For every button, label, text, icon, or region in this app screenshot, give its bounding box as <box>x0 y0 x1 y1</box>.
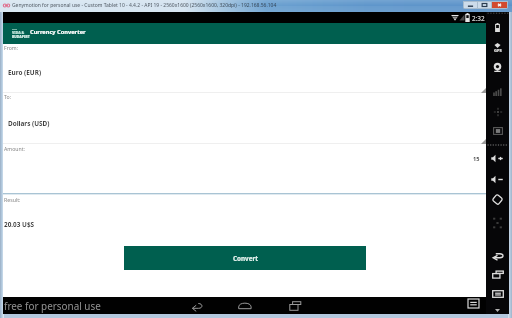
button[interactable]: GPS <box>486 41 509 50</box>
staticText: Currency Converter <box>30 28 86 36</box>
staticText: free for personal use <box>4 299 101 312</box>
button[interactable]: Keyboard pad <box>486 215 509 231</box>
button[interactable]: Recent apps <box>285 297 306 314</box>
button[interactable]: Camera <box>486 61 509 74</box>
button[interactable]: Battery <box>486 21 509 34</box>
staticText: Amount: <box>4 145 25 152</box>
staticText: BUDAPEST <box>12 34 30 39</box>
button[interactable]: Minimize <box>464 2 477 8</box>
button[interactable]: Back <box>187 297 208 314</box>
staticText: Genymotion for personal use - Custom Tab… <box>12 2 277 9</box>
staticText: Result: <box>4 196 21 203</box>
staticText: Convert <box>233 254 258 263</box>
staticText: GPS <box>494 48 502 53</box>
staticText: 2:32 <box>472 14 485 23</box>
button[interactable] <box>3 48 486 93</box>
button[interactable]: Rotate <box>486 192 509 207</box>
button[interactable]: D-pad <box>486 105 509 119</box>
button[interactable]: Volume up <box>486 152 509 165</box>
button[interactable] <box>3 99 486 144</box>
staticText: Dollars (USD) <box>8 119 50 128</box>
button[interactable]: Home <box>234 297 255 314</box>
button[interactable]: Network <box>486 86 509 98</box>
button[interactable] <box>3 150 486 195</box>
button[interactable]: Menu <box>486 288 509 300</box>
staticText: From: <box>4 44 19 51</box>
button[interactable]: Menu <box>467 298 480 309</box>
button[interactable]: Close <box>492 2 507 8</box>
button[interactable]: Back <box>486 250 509 262</box>
button[interactable]: Volume down <box>486 173 509 186</box>
button[interactable]: Recent apps <box>486 268 509 281</box>
staticText: 20.03 U$S <box>4 220 35 229</box>
staticText: To: <box>4 93 12 100</box>
staticText: Euro (EUR) <box>8 68 42 77</box>
staticText: VIDA & <box>12 30 25 35</box>
button[interactable]: Convert <box>124 246 366 270</box>
staticText: 15 <box>473 155 480 163</box>
button[interactable]: Maximize <box>478 2 491 8</box>
button[interactable]: Display <box>486 125 509 137</box>
